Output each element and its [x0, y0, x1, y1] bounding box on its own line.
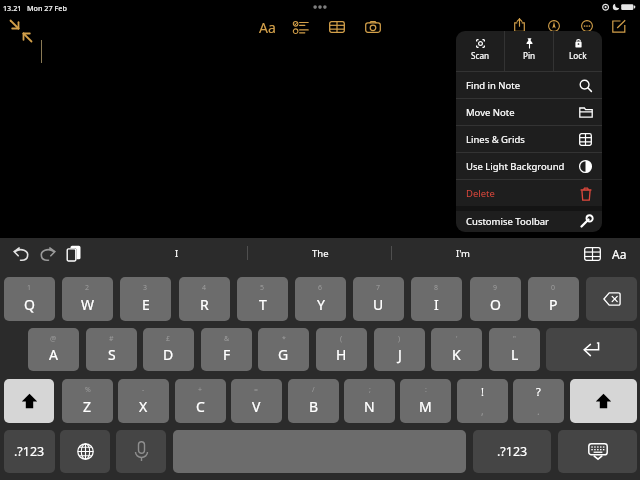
button[interactable]: Lock: [554, 31, 602, 71]
button[interactable]: &: [201, 328, 252, 371]
button[interactable]: Redo: [35, 242, 59, 266]
staticText: !: [481, 384, 484, 399]
staticText: Customise Toolbar: [466, 215, 549, 228]
staticText: X: [139, 397, 148, 416]
button[interactable]: Table: [581, 242, 604, 265]
button[interactable]: Move Note: [456, 99, 602, 125]
staticText: £: [166, 334, 171, 344]
button[interactable]: Camera: [360, 14, 386, 40]
button[interactable]: Table: [324, 14, 350, 40]
button[interactable]: =: [231, 379, 282, 423]
staticText: ?: [536, 384, 541, 399]
button[interactable]: 3: [120, 277, 171, 321]
button[interactable]: Backspace: [586, 277, 637, 321]
button[interactable]: Find in Note: [456, 72, 602, 98]
button[interactable]: ;: [344, 379, 395, 423]
button[interactable]: 2: [62, 277, 113, 321]
staticText: /: [312, 385, 315, 395]
staticText: N: [364, 397, 375, 416]
button[interactable]: +: [175, 379, 226, 423]
button[interactable]: 5: [237, 277, 288, 321]
button[interactable]: Aa: [254, 14, 280, 40]
staticText: C: [196, 397, 205, 416]
button[interactable]: -: [118, 379, 169, 423]
button[interactable]: ?: [513, 379, 564, 423]
button[interactable]: Share: [506, 12, 532, 38]
button[interactable]: 0: [528, 277, 579, 321]
button[interactable]: ': [431, 328, 482, 371]
button[interactable]: *: [258, 328, 309, 371]
button[interactable]: /: [288, 379, 339, 423]
staticText: +: [198, 385, 203, 395]
staticText: 2: [85, 283, 90, 293]
button[interactable]: Checklist: [288, 14, 314, 40]
button[interactable]: 1: [4, 277, 55, 321]
staticText: -: [142, 385, 145, 395]
button[interactable]: Hide keyboard: [558, 430, 637, 473]
button[interactable]: 4: [179, 277, 230, 321]
button[interactable]: Markup: [541, 13, 567, 39]
button[interactable]: #: [86, 328, 137, 371]
staticText: S: [108, 345, 116, 364]
staticText: J: [398, 345, 402, 364]
button[interactable]: Customise Toolbar: [456, 211, 602, 232]
button[interactable]: %: [62, 379, 113, 423]
button[interactable]: Numbers: [4, 430, 55, 473]
staticText: G: [278, 345, 289, 364]
button[interactable]: £: [143, 328, 194, 371]
button[interactable]: Shift: [570, 379, 637, 423]
button[interactable]: 7: [353, 277, 404, 321]
staticText: P: [549, 295, 558, 314]
staticText: I'm: [456, 247, 470, 260]
button[interactable]: @: [28, 328, 79, 371]
staticText: H: [336, 345, 347, 364]
button[interactable]: Undo: [10, 242, 34, 266]
staticText: .?123: [14, 443, 45, 460]
button[interactable]: Paste: [62, 242, 86, 266]
button[interactable]: ): [374, 328, 425, 371]
button[interactable]: Dictate: [116, 430, 166, 473]
staticText: L: [511, 345, 519, 364]
button[interactable]: I'm: [392, 240, 534, 267]
staticText: Lines & Grids: [466, 133, 525, 146]
button[interactable]: Change language: [60, 430, 110, 473]
staticText: Q: [24, 295, 35, 314]
staticText: 3: [143, 283, 148, 293]
button[interactable]: (: [316, 328, 367, 371]
button[interactable]: Numbers: [473, 430, 551, 473]
staticText: W: [81, 295, 95, 314]
button[interactable]: Collapse: [9, 19, 35, 45]
staticText: Find in Note: [466, 79, 521, 92]
button[interactable]: New note: [606, 13, 632, 39]
staticText: .: [537, 404, 540, 418]
button[interactable]: :: [400, 379, 451, 423]
button[interactable]: Aa: [608, 242, 631, 265]
button[interactable]: 9: [470, 277, 521, 321]
button[interactable]: Return: [546, 328, 637, 371]
button[interactable]: Delete: [456, 180, 602, 206]
button[interactable]: Use Light Background: [456, 153, 602, 179]
button[interactable]: ": [489, 328, 540, 371]
staticText: A: [49, 345, 58, 364]
staticText: 4: [202, 283, 207, 293]
button[interactable]: Pin: [505, 31, 553, 71]
staticText: ": [513, 334, 516, 344]
staticText: T: [259, 295, 267, 314]
button[interactable]: The: [248, 240, 392, 267]
button[interactable]: 6: [295, 277, 346, 321]
staticText: M: [419, 397, 432, 416]
staticText: The: [312, 247, 329, 260]
button[interactable]: Shift: [4, 379, 54, 423]
button[interactable]: Lines & Grids: [456, 126, 602, 152]
staticText: =: [254, 385, 259, 395]
staticText: 8: [434, 283, 439, 293]
button[interactable]: Scan: [456, 31, 504, 71]
button[interactable]: I: [118, 240, 236, 267]
staticText: Aa: [612, 246, 627, 262]
button[interactable]: More options: [574, 13, 600, 39]
staticText: Aa: [259, 18, 276, 37]
button[interactable]: !: [457, 379, 508, 423]
staticText: Z: [83, 397, 92, 416]
button[interactable]: 8: [411, 277, 462, 321]
